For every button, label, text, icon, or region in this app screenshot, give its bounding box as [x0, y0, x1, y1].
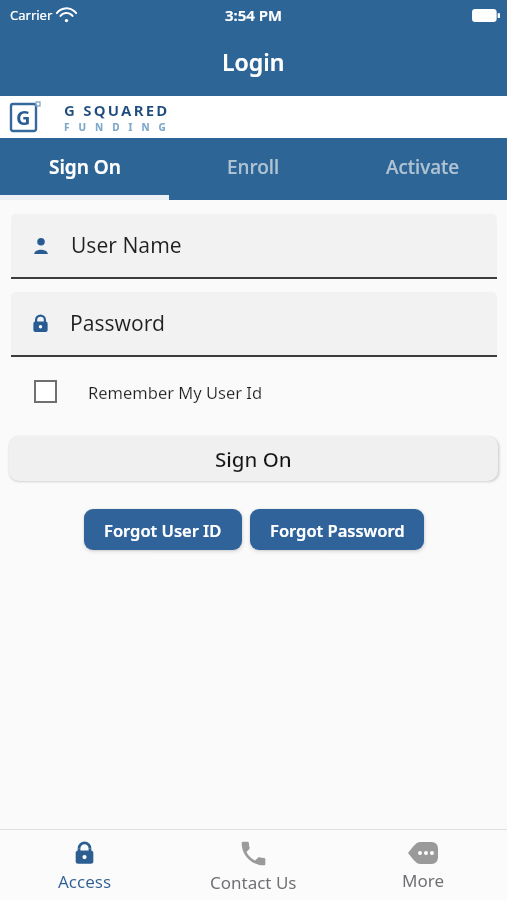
button[interactable]: Contact Us: [169, 830, 338, 900]
staticText: Contact Us: [210, 871, 297, 894]
button[interactable]: Forgot User ID: [84, 509, 242, 550]
staticText: G SQUARED: [64, 100, 170, 120]
staticText: 3:54 PM: [225, 5, 282, 25]
staticText: Login: [222, 46, 285, 77]
staticText: Remember My User Id: [88, 381, 263, 403]
staticText: Sign On: [215, 445, 292, 473]
button[interactable]: Access: [0, 830, 169, 900]
staticText: Access: [58, 870, 112, 893]
button[interactable]: Password: [11, 292, 497, 357]
staticText: User Name: [71, 231, 182, 260]
button[interactable]: Remember My User Id: [34, 380, 263, 403]
button[interactable]: Activate: [338, 138, 507, 200]
button[interactable]: More: [338, 830, 507, 900]
staticText: Enroll: [227, 154, 280, 180]
staticText: Forgot User ID: [104, 519, 222, 541]
staticText: More: [402, 869, 444, 892]
staticText: Password: [70, 309, 165, 338]
staticText: Carrier: [10, 6, 53, 24]
staticText: Sign On: [49, 154, 121, 180]
button[interactable]: Forgot Password: [250, 509, 424, 550]
staticText: Activate: [386, 154, 460, 180]
button[interactable]: Sign On: [9, 436, 498, 481]
button[interactable]: User Name: [11, 214, 497, 279]
staticText: F U N D I N G: [64, 120, 169, 134]
button[interactable]: Sign On: [0, 138, 169, 200]
staticText: G: [16, 104, 31, 131]
staticText: Forgot Password: [270, 519, 405, 541]
button[interactable]: Enroll: [169, 138, 338, 200]
